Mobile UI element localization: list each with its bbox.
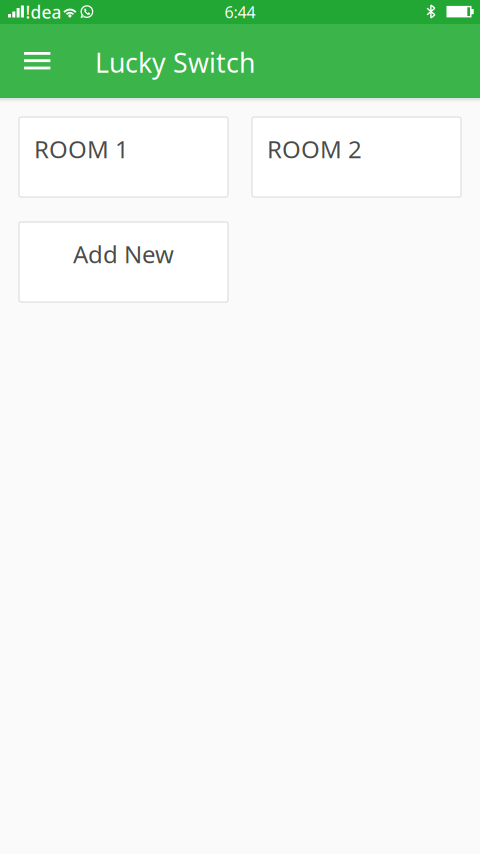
button[interactable]: Add New [19,222,228,302]
staticText: ROOM 2 [267,133,362,165]
staticText: !dea [25,0,61,23]
button[interactable]: ROOM 1 [19,117,228,197]
button[interactable]: ROOM 2 [252,117,461,197]
staticText: Add New [73,238,174,270]
staticText: 6:44 [224,1,255,23]
staticText: ROOM 1 [34,133,129,165]
button[interactable]: Open navigation menu [18,42,56,80]
staticText: Lucky Switch [95,45,255,80]
